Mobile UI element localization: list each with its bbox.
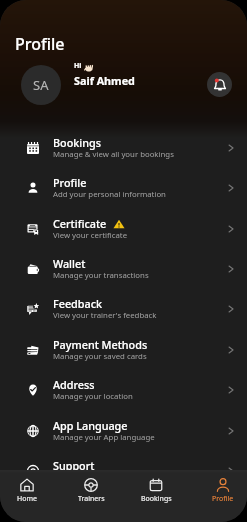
staticText: SA	[33, 76, 49, 94]
button[interactable]: Trainers	[69, 470, 113, 522]
staticText: Manage your saved cards	[53, 351, 147, 362]
staticText: View your certificate	[53, 230, 128, 241]
staticText: Manage your location	[53, 391, 133, 402]
staticText: View your trainer's feedback	[53, 310, 157, 321]
staticText: Get help and support	[53, 472, 131, 483]
button[interactable]: Feedback	[0, 289, 247, 329]
button[interactable]: Support	[0, 451, 247, 491]
staticText: Wallet	[53, 256, 86, 271]
button[interactable]: Certificate	[0, 208, 247, 249]
staticText: Profile	[212, 494, 234, 504]
staticText: Support	[53, 458, 95, 473]
staticText: Saif Ahmed	[74, 73, 135, 88]
staticText: Manage your App language	[53, 432, 155, 443]
staticText: Manage & view all your bookings	[53, 149, 174, 160]
staticText: Certificate	[53, 216, 107, 231]
button[interactable]: Profile	[0, 168, 247, 208]
staticText: Manage your transactions	[53, 270, 149, 281]
staticText: Home	[17, 494, 37, 504]
staticText: Feedback	[53, 296, 102, 311]
button[interactable]: Bookings	[134, 470, 178, 522]
button[interactable]: Profile	[201, 470, 245, 522]
button[interactable]: Payment Methods	[0, 329, 247, 370]
button[interactable]: Bookings	[0, 128, 247, 168]
button[interactable]: Home	[5, 470, 49, 522]
button[interactable]: Wallet	[0, 249, 247, 289]
staticText: Trainers	[78, 494, 105, 504]
staticText: Profile	[53, 175, 87, 190]
button[interactable]: App Language	[0, 410, 247, 451]
staticText: Payment Methods	[53, 337, 148, 352]
staticText: Profile	[15, 33, 65, 55]
staticText: Hi	[74, 61, 82, 71]
staticText: Add your personal information	[53, 189, 166, 200]
staticText: App Language	[53, 418, 128, 433]
button[interactable]: Notifications	[207, 72, 232, 97]
button[interactable]: Address	[0, 370, 247, 410]
staticText: Bookings	[53, 135, 101, 150]
staticText: Bookings	[141, 494, 172, 504]
staticText: Address	[53, 377, 95, 392]
